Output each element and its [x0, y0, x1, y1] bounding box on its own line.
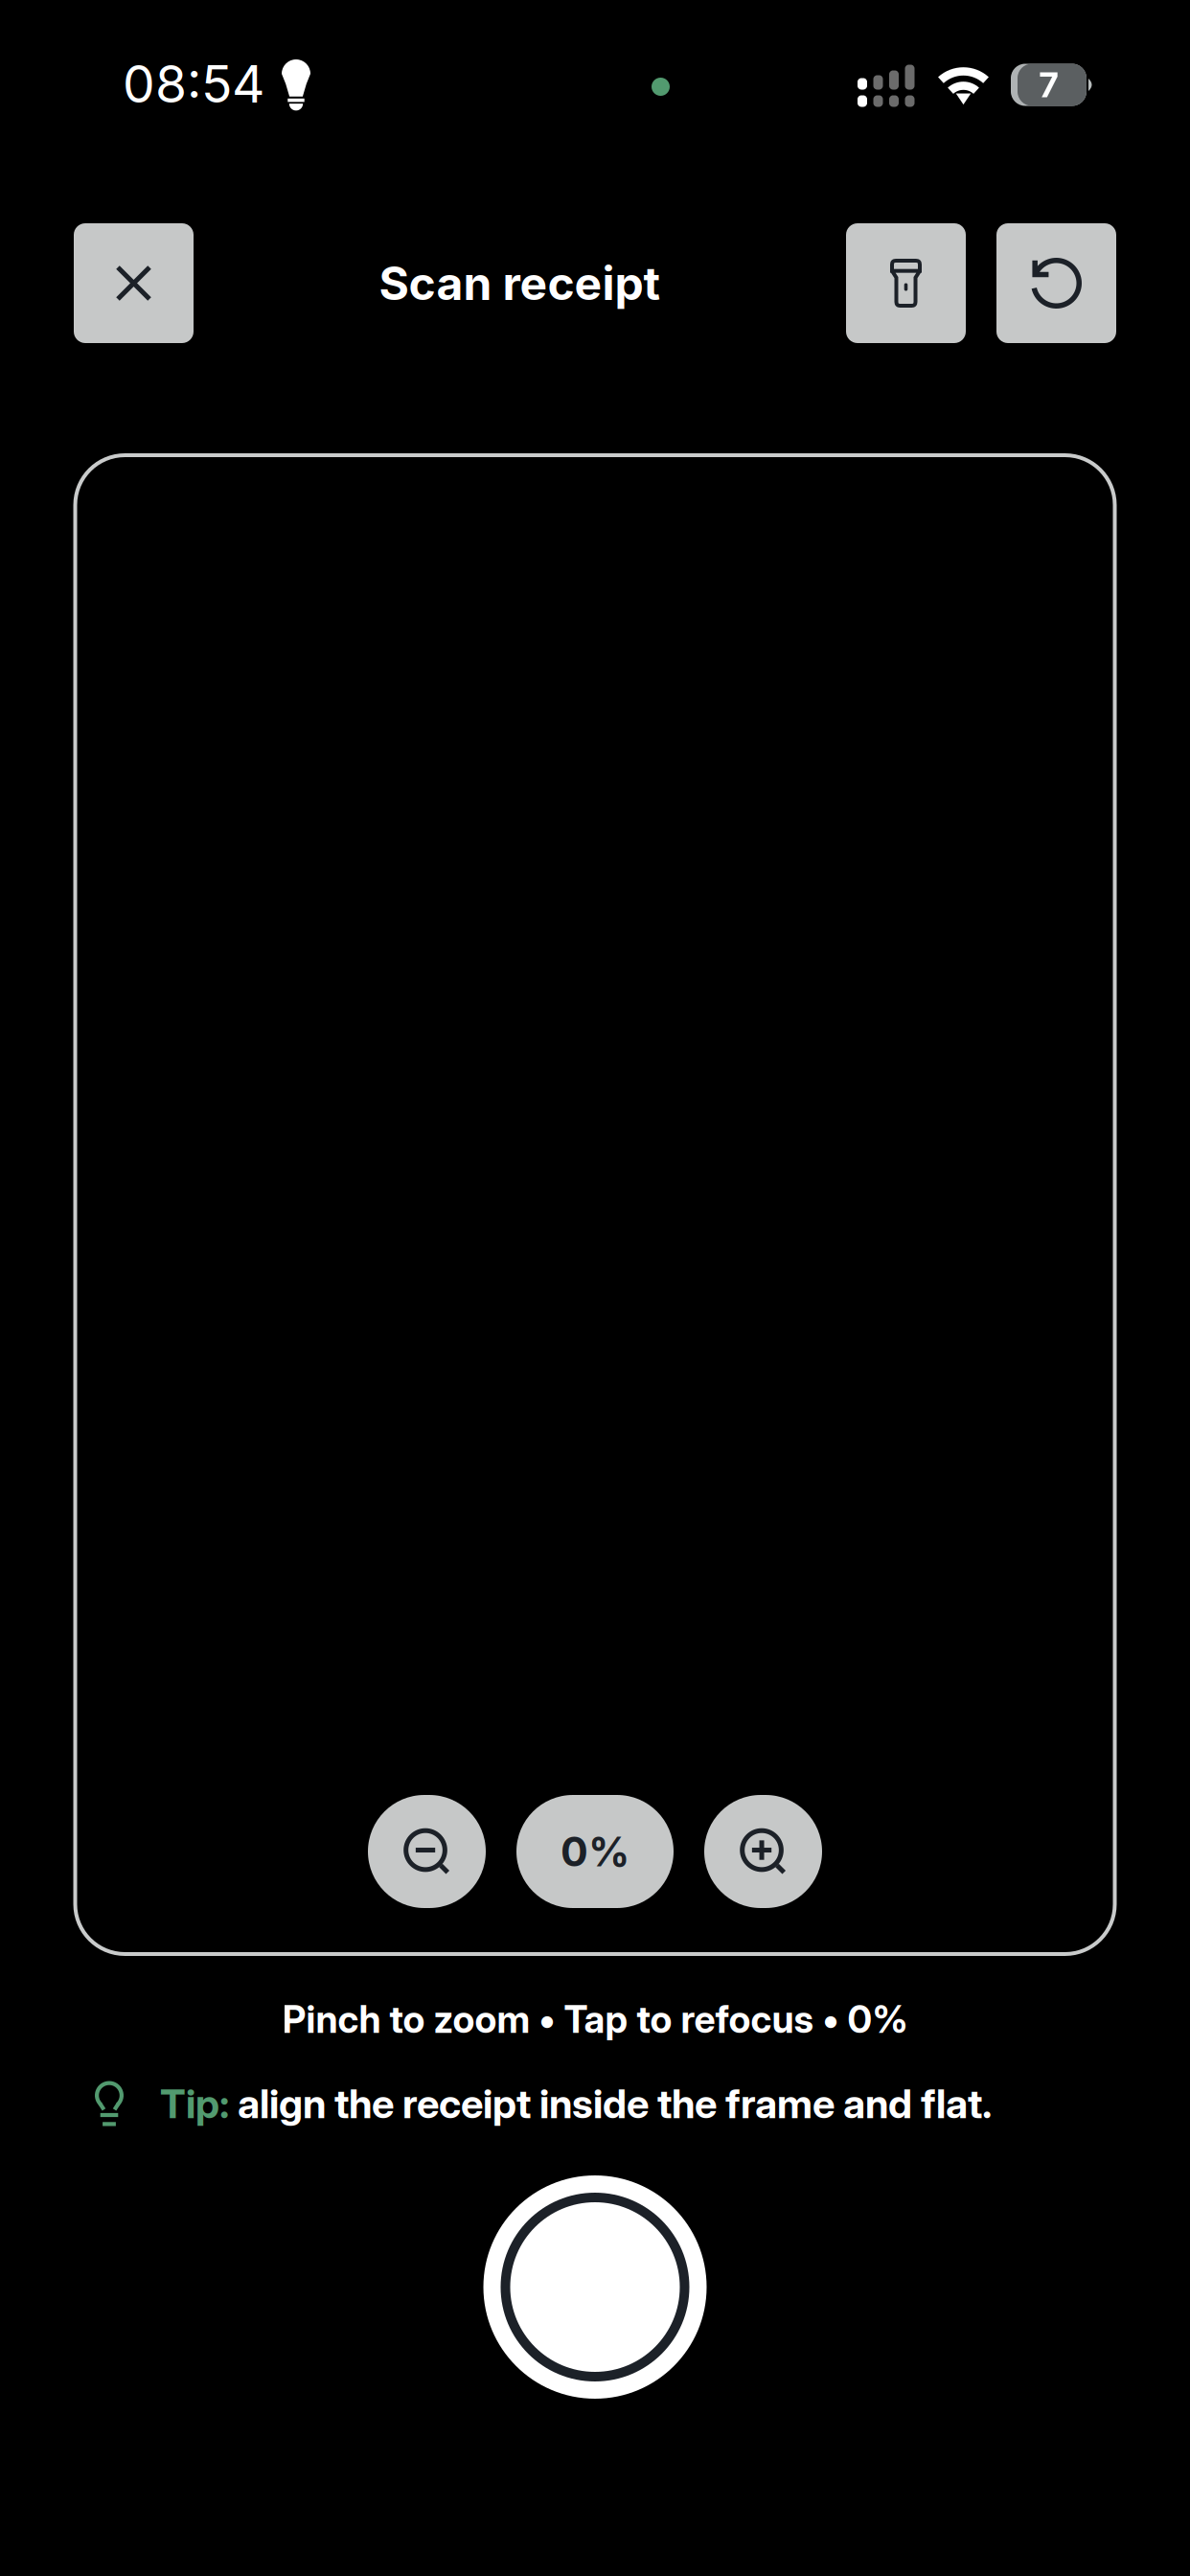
- button[interactable]: 0%: [516, 1795, 674, 1908]
- staticText: Scan receipt: [379, 255, 661, 311]
- button[interactable]: Zoom out: [368, 1795, 486, 1908]
- staticText: align the receipt inside the frame and f…: [229, 2079, 992, 2128]
- staticText: 7: [1039, 64, 1058, 106]
- button[interactable]: Flashlight: [846, 223, 966, 343]
- button[interactable]: Reset: [996, 223, 1116, 343]
- button[interactable]: Zoom in: [704, 1795, 822, 1908]
- staticText: 08:54: [123, 53, 264, 115]
- button[interactable]: Capture: [483, 2175, 707, 2399]
- staticText: Pinch to zoom • Tap to refocus • 0%: [282, 1997, 908, 2042]
- staticText: Tip:: [160, 2079, 229, 2128]
- button[interactable]: Close: [74, 223, 194, 343]
- staticText: 0%: [561, 1827, 629, 1876]
